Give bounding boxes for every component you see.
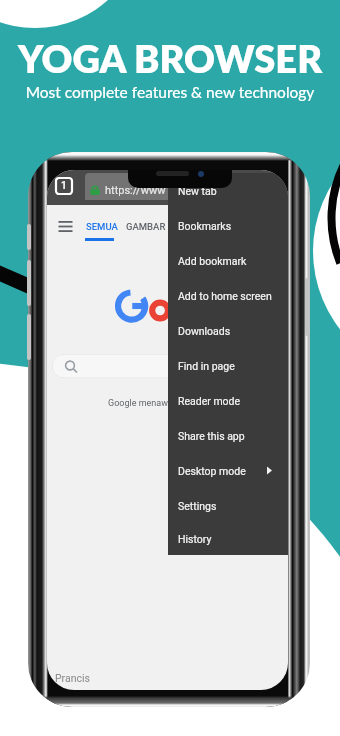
button[interactable]: Share this app (168, 418, 288, 453)
staticText: Google menawarkan (108, 398, 191, 409)
staticText: YOGA BROWSER (0, 35, 340, 81)
button[interactable]: SEMUA (86, 221, 118, 232)
button[interactable]: New tab (168, 173, 288, 208)
staticText: Find in page (178, 360, 235, 372)
button[interactable]: Bookmarks (168, 208, 288, 243)
staticText: Desktop mode (178, 465, 246, 477)
button[interactable]: Settings (168, 488, 288, 523)
button[interactable] (52, 354, 283, 378)
staticText: Add to home screen (178, 290, 272, 302)
staticText: https://www (105, 184, 166, 197)
staticText: Most complete features & new technology (0, 83, 340, 102)
button[interactable]: Add bookmark (168, 243, 288, 278)
button[interactable]: https://www (85, 173, 212, 200)
staticText: New tab (178, 185, 217, 197)
button[interactable]: History (168, 523, 288, 555)
staticText: Share this app (178, 430, 245, 442)
staticText: Reader mode (178, 395, 241, 407)
staticText: Downloads (178, 325, 231, 337)
staticText: Prancis (55, 672, 90, 684)
staticText: History (178, 533, 212, 545)
button[interactable]: Downloads (168, 313, 288, 348)
button[interactable]: Find in page (168, 348, 288, 383)
button[interactable]: Add to home screen (168, 278, 288, 313)
staticText: 1 (61, 180, 67, 192)
button[interactable]: Reader mode (168, 383, 288, 418)
button[interactable]: Desktop mode (168, 453, 288, 488)
button[interactable]: Menu (58, 219, 73, 234)
staticText: Bookmarks (178, 220, 232, 232)
button[interactable]: GAMBAR (126, 221, 166, 232)
staticText: Add bookmark (178, 255, 247, 267)
staticText: Settings (178, 500, 217, 512)
button[interactable]: Tabs (56, 178, 72, 194)
